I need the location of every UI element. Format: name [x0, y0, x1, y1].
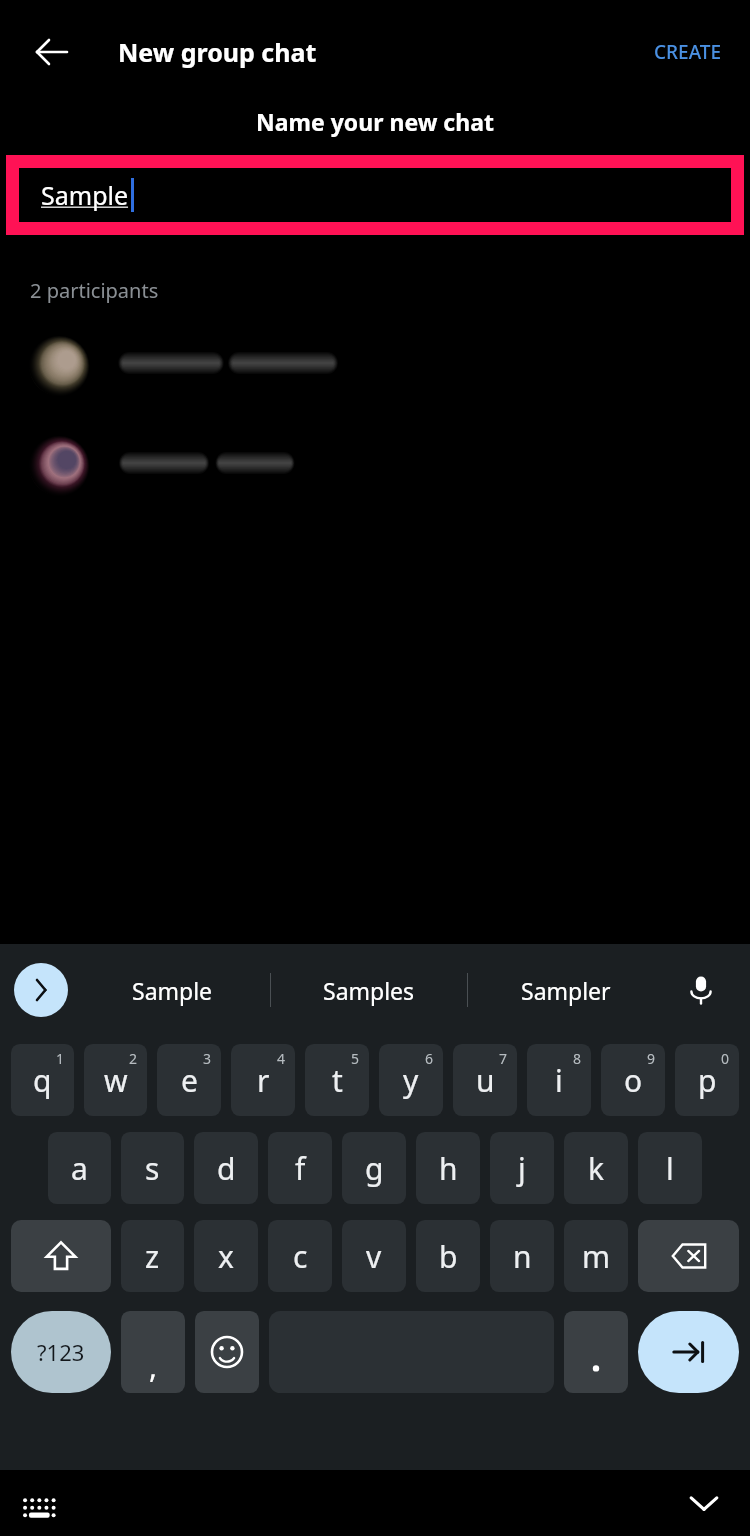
staticText: o	[624, 1060, 643, 1101]
button[interactable]: b	[416, 1220, 480, 1292]
staticText: l	[666, 1148, 674, 1189]
button[interactable]: u	[453, 1044, 517, 1116]
button[interactable]	[0, 332, 750, 394]
staticText: d	[217, 1148, 236, 1189]
button[interactable]: p	[675, 1044, 739, 1116]
button[interactable]: Back	[20, 20, 84, 84]
button[interactable]: Emoji	[195, 1311, 259, 1393]
button[interactable]: Samples	[271, 975, 467, 1006]
button[interactable]: x	[194, 1220, 258, 1292]
button[interactable]: Voice input	[674, 963, 728, 1017]
button[interactable]: j	[490, 1132, 554, 1204]
button[interactable]: Backspace	[638, 1220, 739, 1292]
button[interactable]: Switch keyboard	[12, 1475, 68, 1531]
staticText: g	[365, 1148, 384, 1189]
button[interactable]: Sample	[6, 155, 744, 235]
button[interactable]: q	[11, 1044, 74, 1116]
staticText: ,	[149, 1346, 158, 1387]
button[interactable]: i	[527, 1044, 591, 1116]
staticText: p	[698, 1060, 717, 1101]
staticText: h	[439, 1148, 458, 1189]
staticText: Name your new chat	[0, 106, 750, 137]
button[interactable]: k	[564, 1132, 628, 1204]
staticText: 7	[499, 1049, 508, 1068]
staticText: CREATE	[654, 39, 722, 65]
staticText: 8	[573, 1049, 582, 1068]
button[interactable]: r	[231, 1044, 295, 1116]
button[interactable]: Hide keyboard	[676, 1475, 732, 1531]
staticText: 3	[203, 1049, 212, 1068]
button[interactable]: More suggestions	[14, 963, 68, 1017]
button[interactable]: Period	[564, 1311, 628, 1393]
button[interactable]: ?123	[11, 1311, 111, 1393]
button[interactable]: Sampler	[468, 975, 664, 1006]
button[interactable]: Shift	[11, 1220, 111, 1292]
staticText: r	[257, 1060, 270, 1101]
staticText: Samples	[323, 975, 415, 1006]
staticText: m	[582, 1236, 611, 1277]
button[interactable]: Enter	[638, 1311, 739, 1393]
staticText: 6	[425, 1049, 434, 1068]
staticText: s	[145, 1148, 160, 1189]
button[interactable]: a	[48, 1132, 111, 1204]
staticText: b	[439, 1236, 458, 1277]
staticText: New group chat	[118, 35, 317, 69]
staticText: k	[588, 1148, 605, 1189]
staticText: y	[403, 1060, 419, 1101]
staticText: 4	[277, 1049, 286, 1068]
staticText: q	[33, 1060, 52, 1101]
staticText: v	[366, 1236, 382, 1277]
button[interactable]: g	[342, 1132, 406, 1204]
button[interactable]: c	[268, 1220, 332, 1292]
staticText: j	[518, 1148, 526, 1189]
button[interactable]: o	[601, 1044, 665, 1116]
button[interactable]: n	[490, 1220, 554, 1292]
button[interactable]: e	[157, 1044, 221, 1116]
staticText: 9	[647, 1049, 656, 1068]
button[interactable]: Comma	[121, 1311, 185, 1393]
staticText: ?123	[37, 1337, 85, 1367]
button[interactable]	[0, 432, 750, 494]
staticText: Sample	[41, 178, 129, 212]
staticText: a	[71, 1148, 88, 1189]
staticText: t	[332, 1060, 343, 1101]
staticText: 1	[56, 1049, 65, 1068]
button[interactable]: f	[268, 1132, 332, 1204]
button[interactable]: l	[638, 1132, 702, 1204]
staticText: x	[218, 1236, 234, 1277]
staticText: 5	[351, 1049, 360, 1068]
staticText: 2	[129, 1049, 138, 1068]
button[interactable]: CREATE	[640, 29, 736, 75]
button[interactable]: v	[342, 1220, 406, 1292]
button[interactable]: z	[121, 1220, 184, 1292]
button[interactable]: h	[416, 1132, 480, 1204]
staticText: w	[104, 1060, 128, 1101]
staticText: n	[513, 1236, 532, 1277]
button[interactable]: y	[379, 1044, 443, 1116]
staticText: Sampler	[521, 975, 611, 1006]
staticText: 0	[721, 1049, 730, 1068]
button[interactable]: t	[305, 1044, 369, 1116]
staticText: c	[293, 1236, 308, 1277]
button[interactable]: d	[194, 1132, 258, 1204]
staticText: e	[181, 1060, 198, 1101]
staticText: u	[476, 1060, 495, 1101]
staticText: i	[555, 1060, 563, 1101]
button[interactable]: w	[84, 1044, 147, 1116]
staticText: Sample	[132, 975, 213, 1006]
staticText: z	[145, 1236, 160, 1277]
button[interactable]: m	[564, 1220, 628, 1292]
button[interactable]: Sample	[74, 975, 270, 1006]
button[interactable]: s	[121, 1132, 184, 1204]
staticText: 2 participants	[30, 277, 159, 304]
staticText: f	[295, 1148, 306, 1189]
